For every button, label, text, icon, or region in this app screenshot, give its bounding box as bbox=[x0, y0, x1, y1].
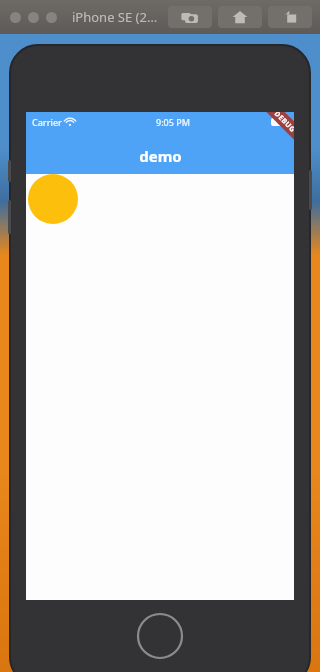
button[interactable]: Window control bbox=[10, 12, 21, 23]
staticText: DEBUG bbox=[272, 112, 294, 135]
button[interactable]: Window control bbox=[46, 12, 57, 23]
button[interactable]: Home bbox=[136, 612, 184, 660]
staticText: 9:05 PM bbox=[156, 116, 190, 128]
button[interactable]: Rotate bbox=[268, 6, 312, 28]
staticText: demo bbox=[139, 146, 182, 166]
staticText: Carrier bbox=[32, 116, 62, 128]
staticText: iPhone SE (2… bbox=[72, 8, 158, 26]
button[interactable]: Window control bbox=[28, 12, 39, 23]
button[interactable]: Home bbox=[218, 6, 262, 28]
button[interactable]: Screenshot bbox=[168, 6, 212, 28]
button[interactable]: Amber circle bbox=[28, 174, 78, 224]
